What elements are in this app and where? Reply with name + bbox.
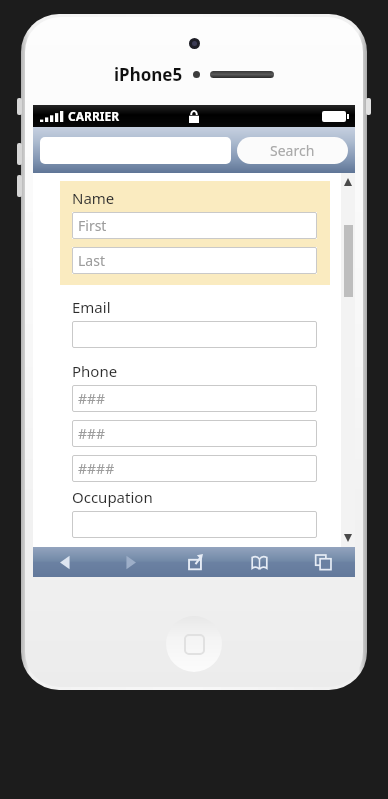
button[interactable]: ### [72, 420, 317, 447]
button[interactable]: Home [166, 616, 222, 672]
button[interactable]: Bookmarks [227, 547, 291, 577]
button[interactable] [40, 137, 231, 164]
staticText: ### [78, 389, 106, 408]
staticText: ### [78, 424, 106, 443]
button[interactable] [72, 511, 317, 538]
staticText: First [78, 216, 107, 235]
button[interactable]: Forward [98, 547, 163, 577]
staticText: Occupation [72, 487, 153, 507]
button[interactable]: ### [72, 385, 317, 412]
button[interactable]: Last [72, 247, 317, 274]
staticText: Phone [72, 361, 118, 381]
staticText: #### [78, 459, 115, 478]
staticText: Last [78, 251, 105, 270]
button[interactable]: First [72, 212, 317, 239]
button[interactable]: Search [237, 137, 348, 164]
button[interactable]: Back [33, 547, 98, 577]
button[interactable]: Share [163, 547, 227, 577]
button[interactable] [72, 321, 317, 348]
staticText: CARRIER [68, 108, 120, 124]
staticText: iPhone5 [114, 63, 183, 86]
button[interactable]: #### [72, 455, 317, 482]
staticText: Search [270, 141, 315, 160]
button[interactable]: Tabs [291, 547, 355, 577]
staticText: Email [72, 297, 111, 317]
staticText: Name [72, 188, 115, 208]
